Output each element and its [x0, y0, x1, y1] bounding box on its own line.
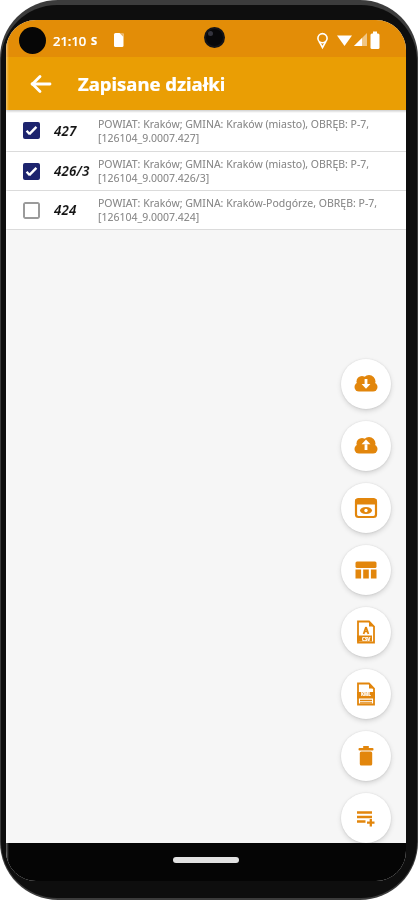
button[interactable] — [341, 421, 391, 471]
staticText: CSV — [362, 636, 371, 642]
button[interactable] — [29, 72, 53, 96]
staticText: POWIAT: Kraków; GMINA: Kraków (miasto), … — [98, 157, 370, 171]
button[interactable] — [341, 793, 391, 843]
button[interactable] — [341, 483, 391, 533]
staticText: [126104_9.0007.427] — [98, 131, 200, 145]
staticText: 424 — [54, 201, 77, 219]
staticText: [126104_9.0007.424] — [98, 210, 200, 224]
button[interactable]: 424 — [6, 191, 406, 229]
button[interactable]: 426/3 — [6, 152, 406, 190]
staticText: [126104_9.0007.426/3] — [98, 171, 210, 185]
button[interactable]: CSV — [341, 607, 391, 657]
button[interactable] — [341, 359, 391, 409]
staticText: 426/3 — [54, 162, 90, 180]
button[interactable] — [341, 731, 391, 781]
staticText: 21:10 — [53, 32, 87, 50]
staticText: POWIAT: Kraków; GMINA: Kraków-Podgórze, … — [98, 196, 378, 210]
staticText: S — [91, 33, 98, 48]
button[interactable]: 427 — [6, 110, 406, 151]
staticText: Zapisane działki — [78, 71, 226, 96]
button[interactable] — [341, 545, 391, 595]
button[interactable]: KML — [341, 669, 391, 719]
staticText: 427 — [54, 122, 77, 140]
staticText: KML — [361, 691, 371, 697]
staticText: POWIAT: Kraków; GMINA: Kraków (miasto), … — [98, 117, 370, 131]
